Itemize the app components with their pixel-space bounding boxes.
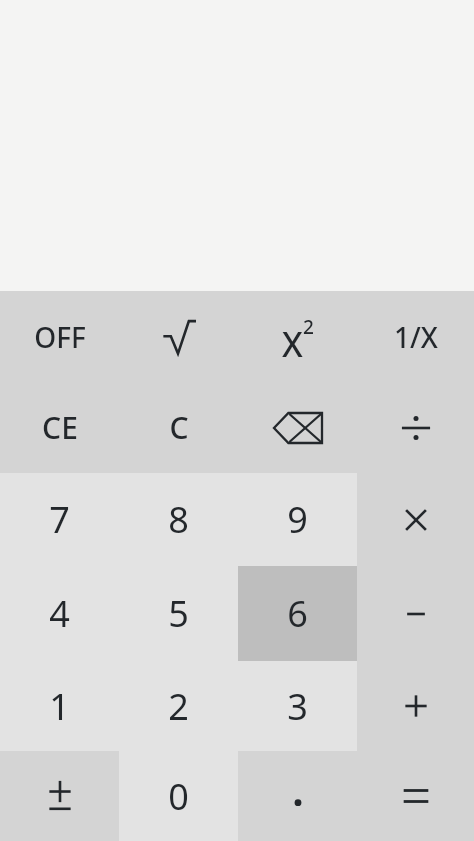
staticText: 7: [49, 495, 70, 544]
staticText: CE: [42, 407, 78, 448]
staticText: 2: [303, 314, 314, 340]
button[interactable]: 5: [119, 566, 238, 661]
staticText: 4: [49, 589, 70, 638]
staticText: 2: [168, 682, 189, 731]
button[interactable]: 9: [238, 473, 357, 566]
staticText: 0: [168, 772, 189, 821]
staticText: X: [282, 321, 303, 367]
button[interactable]: 0: [119, 751, 238, 841]
staticText: OFF: [34, 318, 86, 356]
staticText: 6: [287, 589, 308, 638]
button[interactable]: 2: [119, 661, 238, 751]
button[interactable]: Multiply: [357, 473, 474, 566]
staticText: C: [169, 407, 189, 448]
button[interactable]: Square root: [119, 291, 238, 382]
button[interactable]: Minus: [357, 566, 474, 661]
button[interactable]: 8: [119, 473, 238, 566]
button[interactable]: Equals: [357, 751, 474, 841]
button[interactable]: OFF: [0, 291, 119, 382]
button[interactable]: 1: [0, 661, 119, 751]
button[interactable]: 7: [0, 473, 119, 566]
staticText: 5: [168, 589, 189, 638]
button[interactable]: 3: [238, 661, 357, 751]
staticText: 3: [287, 682, 308, 731]
staticText: 1/X: [394, 318, 438, 356]
button[interactable]: 1/X: [357, 291, 474, 382]
button[interactable]: Plus: [357, 661, 474, 751]
button[interactable]: Divide: [357, 382, 474, 473]
button[interactable]: Plus or minus: [0, 751, 119, 841]
button[interactable]: X squared: [238, 291, 357, 382]
button[interactable]: 6: [238, 566, 357, 661]
button[interactable]: CE: [0, 382, 119, 473]
staticText: 1: [49, 682, 70, 731]
button[interactable]: 4: [0, 566, 119, 661]
staticText: 8: [168, 495, 189, 544]
button[interactable]: C: [119, 382, 238, 473]
button[interactable]: Decimal point: [238, 751, 357, 841]
staticText: 9: [287, 495, 308, 544]
button[interactable]: Backspace: [238, 382, 357, 473]
